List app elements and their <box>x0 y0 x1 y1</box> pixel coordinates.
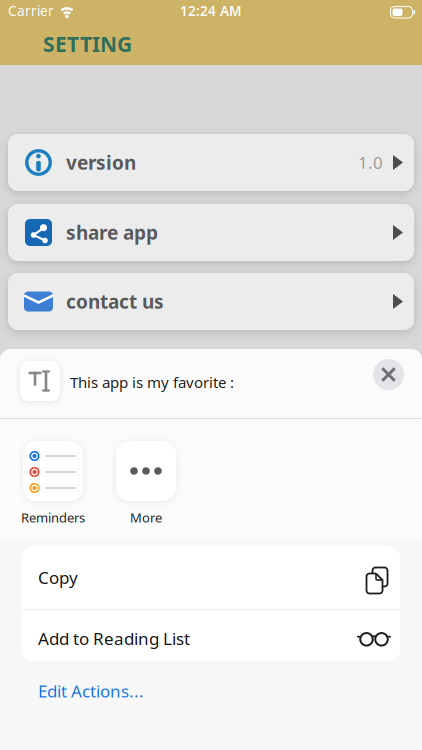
staticText: Reminders <box>21 508 85 526</box>
staticText: 12:24 AM <box>180 1 242 20</box>
staticText: Carrier <box>8 1 54 20</box>
staticText: version <box>66 150 136 175</box>
staticText: Edit Actions... <box>38 679 144 703</box>
button[interactable]: Copy <box>22 546 400 609</box>
staticText: 1.0 <box>358 151 383 174</box>
button[interactable]: Add to Reading List <box>22 610 400 661</box>
button[interactable]: Close <box>373 359 404 390</box>
button[interactable]: More <box>93 441 199 529</box>
button[interactable]: contact us <box>8 273 414 330</box>
staticText: SETTING <box>43 29 132 58</box>
button[interactable]: Shared text <box>20 361 60 401</box>
button[interactable]: share app <box>8 204 414 261</box>
staticText: More <box>130 508 162 526</box>
staticText: contact us <box>66 289 164 314</box>
staticText: share app <box>66 220 158 245</box>
button[interactable]: version <box>8 134 414 191</box>
button[interactable]: Reminders <box>0 441 106 529</box>
staticText: This app is my favorite : <box>70 372 234 392</box>
button[interactable]: Edit Actions... <box>38 676 144 706</box>
staticText: Add to Reading List <box>38 627 190 650</box>
staticText: Copy <box>38 566 78 589</box>
